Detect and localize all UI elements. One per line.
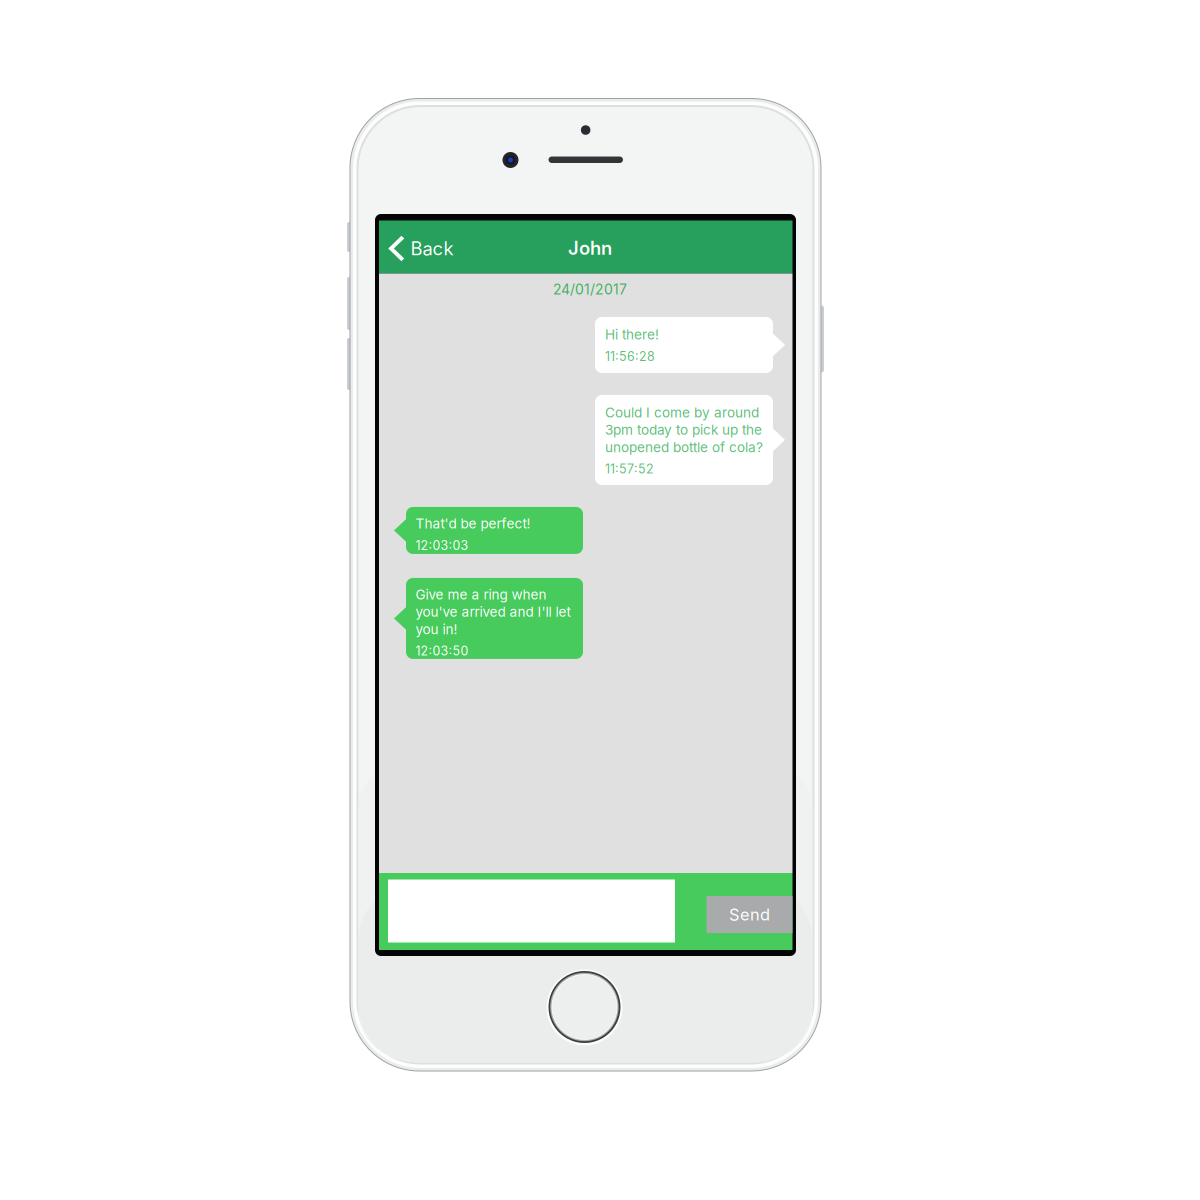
- button[interactable]: Send: [706, 896, 792, 933]
- staticText: 12:03:03: [415, 538, 468, 553]
- staticText: 12:03:50: [415, 643, 468, 658]
- staticText: Back: [410, 237, 453, 260]
- staticText: 24/01/2017: [553, 281, 627, 298]
- staticText: Could I come by around 3pm today to pick…: [605, 404, 763, 455]
- staticText: John: [568, 237, 612, 259]
- staticText: That'd be perfect!: [415, 515, 530, 532]
- button[interactable]: Give me a ring when you've arrived and I…: [394, 578, 583, 659]
- button[interactable]: Could I come by around 3pm today to pick…: [595, 395, 785, 485]
- staticText: Hi there!: [605, 326, 659, 343]
- button[interactable]: That'd be perfect!: [394, 507, 583, 554]
- staticText: 11:56:28: [605, 349, 655, 364]
- staticText: Give me a ring when you've arrived and I…: [415, 586, 570, 637]
- staticText: Send: [729, 905, 770, 924]
- button[interactable]: Back: [379, 220, 499, 273]
- button[interactable]: Hi there!: [595, 317, 785, 373]
- staticText: 11:57:52: [605, 461, 654, 476]
